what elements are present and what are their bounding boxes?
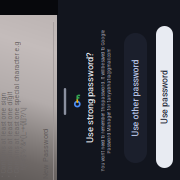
staticText: New Password <box>1 41 51 50</box>
staticText: Contains at least one digit <box>6 6 88 14</box>
staticText: Use strong password? <box>37 84 128 95</box>
button[interactable]: Use other password <box>17 124 147 147</box>
staticText: Use other password <box>43 130 120 141</box>
staticText: You won't need to remember this password… <box>8 100 149 106</box>
staticText: Contains at least one sign <box>6 0 87 7</box>
staticText: Contains at least one special character … <box>6 13 138 20</box>
staticText: Use password <box>56 159 110 170</box>
staticText: !@#$%^&*()_-+{}[]?/\| <box>10 19 73 27</box>
button[interactable]: Use password <box>12 156 154 173</box>
staticText: Password Manager for tanyabhatia@gmail.c… <box>26 106 131 112</box>
